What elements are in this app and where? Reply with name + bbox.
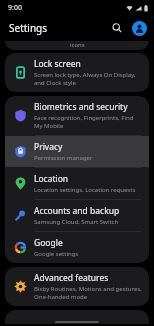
- staticText: Lock screen: [34, 58, 81, 70]
- staticText: Location: [34, 173, 69, 185]
- button[interactable]: Google: [5, 232, 149, 263]
- staticText: Settings: [9, 21, 48, 35]
- staticText: Permission manager: [34, 154, 93, 162]
- button[interactable]: Privacy: [5, 136, 149, 167]
- staticText: Face recognition, Fingerprints, Find My …: [34, 114, 142, 130]
- staticText: 9:00: [8, 3, 22, 13]
- button[interactable]: Account: [132, 21, 147, 36]
- staticText: Screen lock type, Always On Display, and…: [34, 71, 142, 87]
- button[interactable]: Biometrics and security: [5, 96, 149, 135]
- button[interactable]: Advanced features: [5, 267, 149, 306]
- staticText: Privacy: [34, 141, 63, 153]
- staticText: Accounts and backup: [34, 205, 120, 217]
- button[interactable]: icons: [5, 41, 149, 50]
- button[interactable]: Accounts and backup: [5, 200, 149, 231]
- staticText: Bixby Routines, Motions and gestures, On…: [34, 285, 142, 301]
- staticText: Google settings: [34, 250, 79, 258]
- button[interactable]: [5, 310, 149, 324]
- staticText: Biometrics and security: [34, 101, 128, 113]
- staticText: Location settings, Location requests: [34, 186, 136, 194]
- staticText: icons: [70, 41, 85, 49]
- button[interactable]: Search: [109, 20, 125, 36]
- staticText: Advanced features: [34, 272, 109, 284]
- staticText: Google: [34, 237, 63, 249]
- staticText: Samsung Cloud, Smart Switch: [34, 218, 119, 226]
- button[interactable]: Location: [5, 168, 149, 199]
- button[interactable]: Lock screen: [5, 53, 149, 92]
